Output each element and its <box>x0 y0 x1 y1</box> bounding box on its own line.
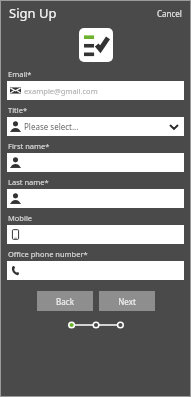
button[interactable]: Cancel <box>149 4 190 23</box>
button[interactable]: Back <box>37 291 93 311</box>
staticText: Email* <box>8 69 32 79</box>
staticText: Please select... <box>24 121 169 132</box>
staticText: example@gmail.com <box>24 86 181 96</box>
staticText: Mobile <box>8 213 33 223</box>
button[interactable]: Please select... <box>7 117 184 136</box>
staticText: Sign Up <box>9 4 57 22</box>
staticText: First name* <box>8 141 50 151</box>
staticText: Cancel <box>157 8 182 19</box>
staticText: Back <box>56 296 74 307</box>
staticText: Last name* <box>8 177 49 187</box>
staticText: Next <box>118 296 136 307</box>
staticText: Title* <box>8 105 28 115</box>
button[interactable] <box>7 261 184 280</box>
button[interactable] <box>7 153 184 172</box>
button[interactable] <box>7 225 184 244</box>
button[interactable]: example@gmail.com <box>7 81 184 100</box>
staticText: Office phone number* <box>8 249 88 259</box>
button[interactable]: Next <box>99 291 155 311</box>
button[interactable] <box>7 189 184 208</box>
